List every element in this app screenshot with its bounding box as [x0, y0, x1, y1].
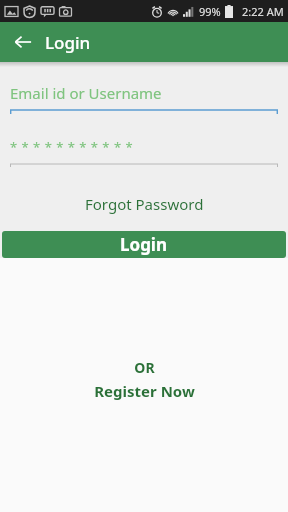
staticText: 99%: [199, 4, 221, 19]
staticText: Forgot Password: [85, 194, 204, 214]
button[interactable]: * * * * * * * * * * *: [10, 138, 278, 167]
staticText: Email id or Username: [10, 83, 162, 103]
button[interactable]: Register Now: [86, 379, 203, 403]
button[interactable]: Forgot Password: [73, 191, 216, 217]
button[interactable]: Email id or Username: [10, 83, 278, 114]
staticText: 2:22 AM: [242, 4, 284, 19]
staticText: Register Now: [94, 381, 195, 401]
staticText: Login: [45, 31, 91, 54]
staticText: OR: [134, 358, 155, 377]
button[interactable]: Login: [2, 231, 286, 258]
button[interactable]: Back: [9, 28, 37, 56]
staticText: * * * * * * * * * * *: [10, 138, 134, 156]
staticText: Login: [120, 233, 168, 256]
